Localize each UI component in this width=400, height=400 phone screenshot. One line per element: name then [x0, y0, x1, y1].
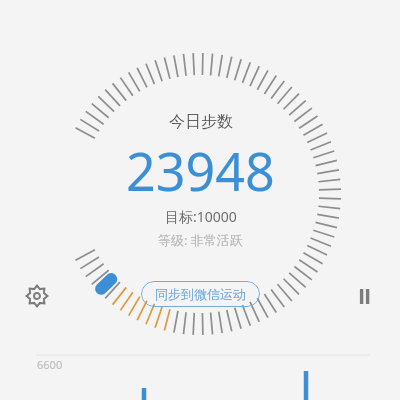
- staticText: 等级: 非常活跃: [158, 231, 243, 249]
- staticText: 同步到微信运动: [155, 286, 246, 302]
- staticText: 今日步数: [169, 112, 233, 132]
- staticText: 23948: [126, 135, 275, 206]
- button[interactable]: Pause: [342, 275, 384, 317]
- staticText: 目标:10000: [165, 207, 237, 226]
- button[interactable]: Settings: [16, 275, 58, 317]
- button[interactable]: 同步到微信运动: [141, 281, 260, 307]
- staticText: 6600: [37, 357, 63, 372]
